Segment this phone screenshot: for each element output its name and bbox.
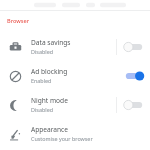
staticText: Data savings xyxy=(31,38,71,47)
staticText: Enabled xyxy=(31,77,52,84)
staticText: Disabled xyxy=(31,48,53,55)
button[interactable]: Enabled toggle xyxy=(124,69,144,83)
button[interactable]: Data savings xyxy=(0,32,150,61)
button[interactable]: Ad blocking xyxy=(0,61,150,90)
staticText: Browser xyxy=(7,17,30,25)
button[interactable]: Appearance xyxy=(0,119,150,148)
staticText: Night mode xyxy=(31,96,68,105)
staticText: Disabled xyxy=(31,106,53,113)
staticText: Customise your browser xyxy=(31,135,93,142)
button[interactable]: Disabled toggle xyxy=(124,98,144,112)
staticText: Ad blocking xyxy=(31,67,68,76)
button[interactable]: Disabled toggle xyxy=(124,40,144,54)
button[interactable]: Night mode xyxy=(0,90,150,119)
staticText: Appearance xyxy=(31,125,68,134)
